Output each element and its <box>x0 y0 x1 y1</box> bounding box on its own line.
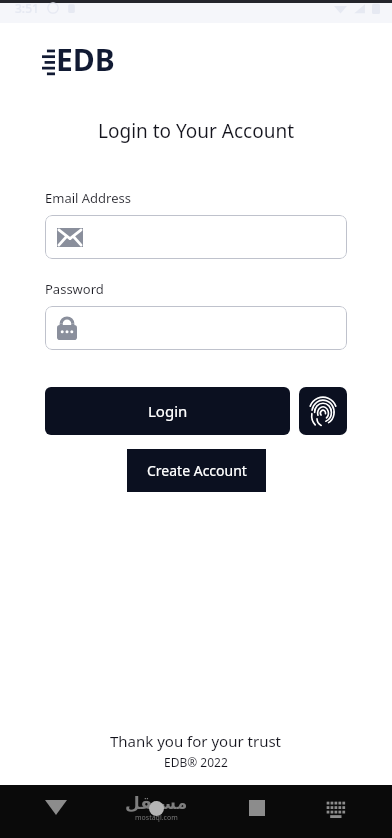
staticText: EDB® 2022 <box>164 754 228 770</box>
button[interactable]: Home <box>111 785 201 830</box>
button[interactable]: Back <box>32 785 80 830</box>
staticText: Password <box>45 280 104 298</box>
button[interactable]: Recent apps <box>233 785 281 830</box>
staticText: Thank you for your trust <box>110 731 282 751</box>
button[interactable]: Create Account <box>127 449 266 492</box>
button[interactable] <box>45 306 347 350</box>
staticText: Create Account <box>147 461 247 480</box>
staticText: مستقل <box>125 793 188 813</box>
staticText: 3:51 <box>15 0 39 16</box>
button[interactable]: Login <box>45 387 290 435</box>
staticText: Login <box>148 401 188 421</box>
staticText: mostaql.com <box>135 813 178 823</box>
button[interactable]: Login with fingerprint <box>299 387 347 435</box>
staticText: EDB <box>56 39 115 80</box>
staticText: Email Address <box>45 189 131 207</box>
button[interactable]: Keyboard <box>312 785 360 830</box>
staticText: Login to Your Account <box>98 118 295 144</box>
button[interactable] <box>45 215 347 259</box>
